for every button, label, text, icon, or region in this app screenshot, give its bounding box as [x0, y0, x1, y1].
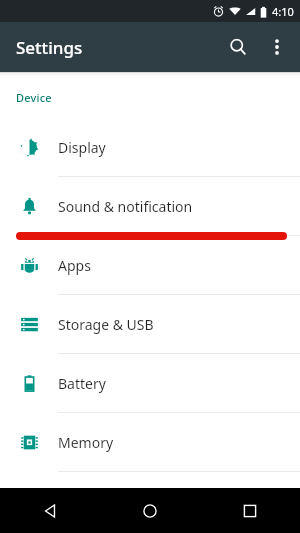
staticText: 4:10 — [272, 4, 294, 19]
button[interactable]: Apps — [0, 236, 300, 294]
button[interactable]: Display — [0, 118, 300, 176]
button[interactable]: Sound & notification — [0, 177, 300, 235]
staticText: Battery — [58, 374, 106, 393]
button[interactable]: Back — [0, 488, 100, 533]
button[interactable]: Battery — [0, 354, 300, 412]
staticText: Settings — [16, 36, 83, 59]
button[interactable]: Memory — [0, 413, 300, 471]
button[interactable]: Storage & USB — [0, 295, 300, 353]
staticText: Apps — [58, 256, 91, 275]
button[interactable]: More options — [258, 28, 296, 66]
staticText: Display — [58, 138, 106, 157]
staticText: Memory — [58, 433, 114, 452]
staticText: Sound & notification — [58, 197, 193, 216]
staticText: Storage & USB — [58, 315, 154, 334]
button[interactable]: Home — [100, 488, 200, 533]
staticText: Device — [16, 90, 52, 105]
button[interactable]: Search — [218, 27, 258, 67]
button[interactable]: Recent apps — [200, 488, 300, 533]
